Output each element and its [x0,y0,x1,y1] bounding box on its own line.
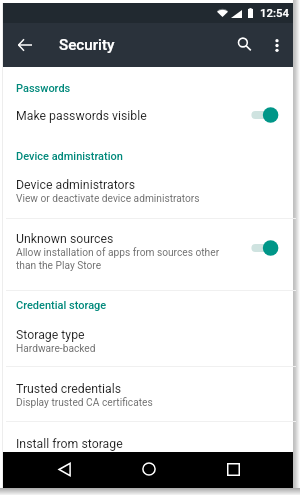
staticText: Hardware-backed [16,343,96,355]
button[interactable]: Navigate up [12,23,36,67]
button[interactable]: Unknown sources [3,218,293,290]
button[interactable]: Device administrators [3,163,293,218]
button[interactable]: Home [132,453,166,487]
button[interactable]: Search [229,23,263,67]
staticText: Install from storage [16,437,123,451]
staticText: Trusted credentials [16,382,122,396]
staticText: View or deactivate device administrators [16,193,200,205]
button[interactable]: Make passwords visible [3,75,293,117]
staticText: Storage type [16,328,85,342]
staticText: Display trusted CA certificates [16,397,153,409]
staticText: Device administrators [16,178,136,192]
staticText: Device administration [16,150,123,163]
button[interactable]: Trusted credentials [3,366,293,421]
staticText: Credential storage [16,299,107,312]
button[interactable]: Back [47,453,81,487]
staticText: 12:54 [260,6,289,19]
staticText: Allow installation of apps from sources … [16,247,220,272]
button[interactable]: More options [263,23,289,67]
staticText: Make passwords visible [16,109,147,123]
button[interactable]: Storage type [3,311,293,366]
staticText: Security [59,36,115,54]
button[interactable]: Install from storage [3,421,293,463]
staticText: Unknown sources [16,232,114,246]
staticText: Passwords [16,82,71,95]
button[interactable]: Recent apps [216,453,250,487]
